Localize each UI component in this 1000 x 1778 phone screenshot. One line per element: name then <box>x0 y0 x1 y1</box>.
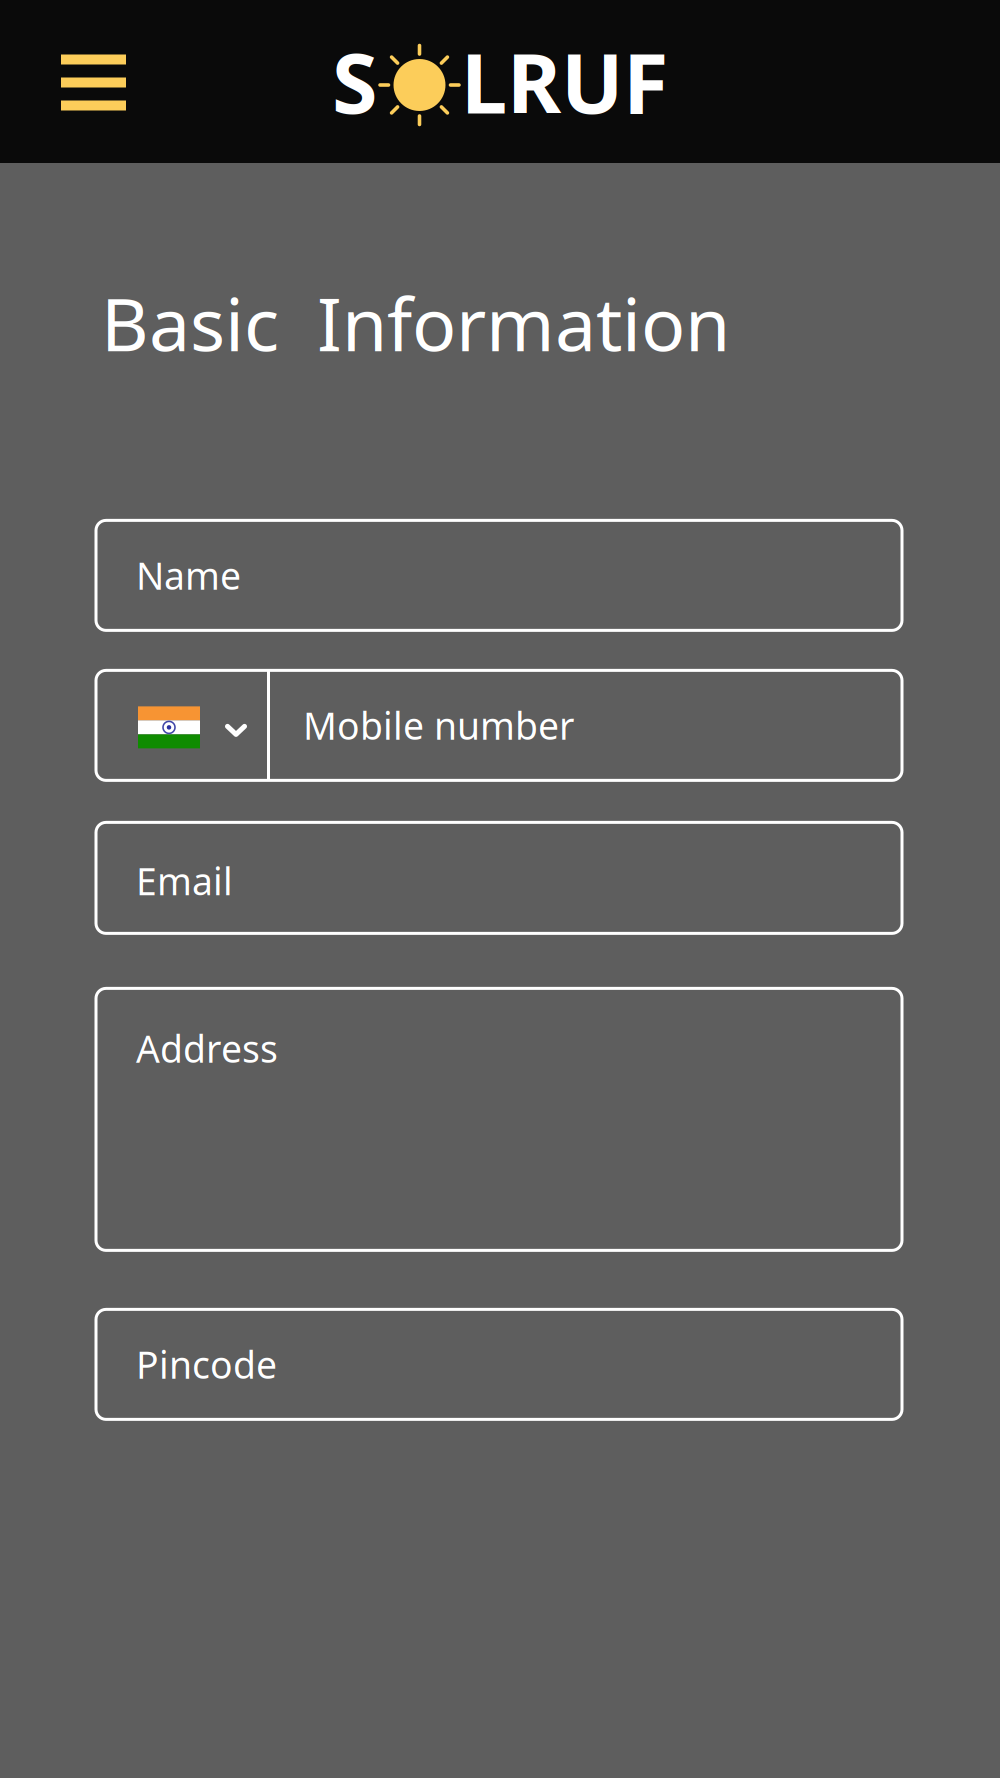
staticText: R <box>507 27 561 136</box>
staticText: S <box>332 27 378 136</box>
staticText: Basic Information <box>101 274 730 371</box>
button[interactable]: Address <box>96 988 902 1250</box>
staticText: F <box>623 27 668 136</box>
staticText: Address <box>136 1023 278 1073</box>
staticText: Mobile number <box>303 701 574 750</box>
button[interactable]: Pincode <box>96 1309 902 1419</box>
button[interactable]: Name <box>96 520 902 630</box>
button[interactable]: Country code: India <box>96 670 267 780</box>
staticText: U <box>561 27 623 136</box>
button[interactable]: Menu <box>0 0 126 163</box>
staticText: Email <box>136 856 233 906</box>
staticText: Pincode <box>136 1340 277 1389</box>
staticText: L <box>461 27 507 136</box>
button[interactable]: Mobile number <box>270 670 902 780</box>
button[interactable]: Email <box>96 822 902 933</box>
staticText: Name <box>136 551 241 600</box>
